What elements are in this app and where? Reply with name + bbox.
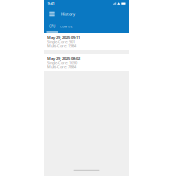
button[interactable]: May 29, 2025 08:02 [44, 54, 129, 71]
staticText: May 29, 2025 08:02 [47, 56, 80, 61]
button[interactable]: COMPUTE [58, 21, 74, 31]
button[interactable]: May 29, 2025 09:11 [44, 33, 129, 50]
staticText: 9:41 [47, 1, 54, 6]
staticText: COMPUTE [60, 25, 72, 28]
staticText: History [61, 11, 75, 17]
staticText: Multi-Core: 7884 [47, 64, 76, 69]
staticText: Multi-Core: 1984 [47, 43, 76, 48]
staticText: CPU [49, 25, 55, 28]
staticText: Single-Core: 901 [47, 39, 75, 44]
staticText: Single-Core: 1690 [47, 60, 77, 65]
staticText: May 29, 2025 09:11 [47, 35, 80, 40]
button[interactable]: CPU [46, 21, 58, 31]
button[interactable]: Menu [47, 8, 56, 19]
